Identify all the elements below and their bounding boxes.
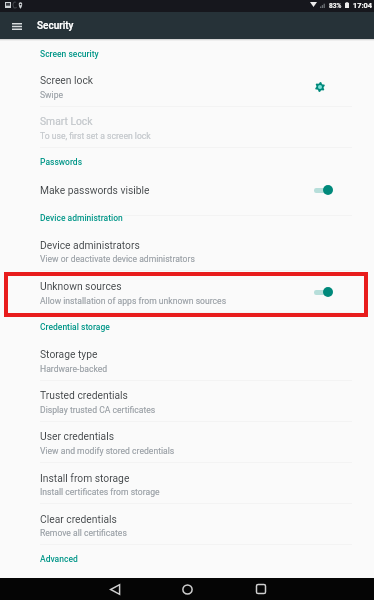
button[interactable]: [0, 271, 374, 312]
staticText: Install from storage: [40, 472, 130, 484]
button[interactable]: Make passwords visible switch: [308, 180, 342, 200]
staticText: View and modify stored credentials: [40, 446, 175, 456]
button[interactable]: [0, 106, 374, 147]
staticText: Unknown sources: [40, 280, 122, 292]
staticText: Smart Lock: [40, 115, 93, 127]
staticText: Security: [37, 20, 74, 32]
button[interactable]: [0, 543, 374, 571]
staticText: 83%: [329, 2, 342, 10]
button[interactable]: Unknown sources switch: [308, 282, 342, 302]
staticText: Hardware-backed: [40, 364, 108, 374]
button[interactable]: [0, 462, 374, 503]
staticText: Device administration: [40, 213, 123, 223]
staticText: Advanced: [40, 554, 78, 564]
staticText: Remove all certificates: [40, 528, 127, 538]
staticText: View or deactivate device administrators: [40, 254, 195, 264]
staticText: Screen security: [40, 49, 99, 59]
staticText: Passwords: [40, 157, 83, 167]
button[interactable]: [0, 380, 374, 421]
button[interactable]: [0, 174, 374, 215]
staticText: User credentials: [40, 430, 114, 442]
staticText: To use, first set a screen lock: [40, 131, 151, 141]
staticText: Swipe: [40, 90, 64, 100]
staticText: 17:04: [353, 1, 373, 10]
button[interactable]: [0, 421, 374, 462]
staticText: Display trusted CA certificates: [40, 405, 156, 415]
button[interactable]: [0, 229, 374, 270]
button[interactable]: Screen lock settings: [308, 75, 332, 99]
button[interactable]: Navigation menu: [5, 14, 29, 38]
staticText: Credential storage: [40, 322, 110, 332]
button[interactable]: Back: [95, 578, 135, 600]
button[interactable]: Recent apps: [241, 578, 281, 600]
staticText: Install certificates from storage: [40, 487, 160, 497]
staticText: Trusted credentials: [40, 389, 128, 401]
button[interactable]: [0, 503, 374, 544]
button[interactable]: [0, 65, 374, 106]
staticText: Clear credentials: [40, 513, 117, 525]
staticText: Device administrators: [40, 239, 140, 251]
staticText: Allow installation of apps from unknown …: [40, 296, 227, 306]
button[interactable]: Home: [167, 578, 207, 600]
button[interactable]: [0, 339, 374, 380]
staticText: Make passwords visible: [40, 184, 150, 196]
staticText: Storage type: [40, 348, 98, 360]
staticText: Screen lock: [40, 74, 94, 86]
